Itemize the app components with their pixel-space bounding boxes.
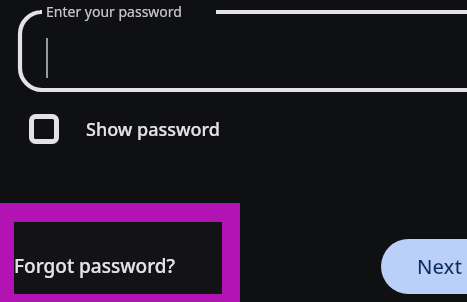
staticText: Next xyxy=(417,253,463,280)
button[interactable]: Next xyxy=(381,239,467,294)
staticText: Show password xyxy=(86,117,220,142)
staticText: Enter your password xyxy=(46,2,182,21)
button[interactable]: Show password checkbox xyxy=(20,105,260,153)
other: Show password checkbox xyxy=(29,114,59,144)
button[interactable]: Forgot password? xyxy=(0,203,240,302)
staticText: Forgot password? xyxy=(14,253,176,279)
